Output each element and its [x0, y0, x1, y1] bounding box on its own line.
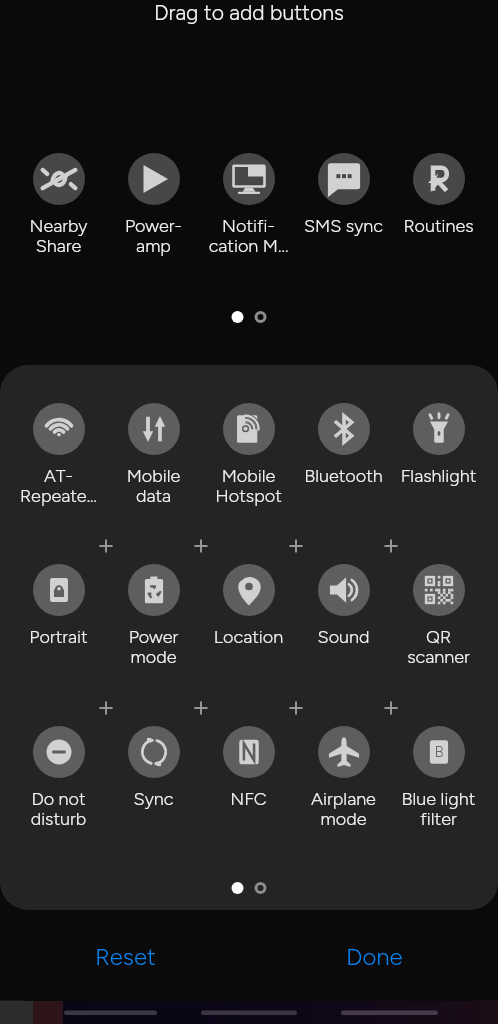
staticText: Routines	[391, 215, 486, 237]
button[interactable]: Nearby Share	[11, 153, 106, 263]
button[interactable]: QR scanner	[391, 564, 486, 674]
staticText: NFC	[201, 788, 296, 810]
button[interactable]: Airplane mode	[296, 726, 391, 836]
staticText: Mobile data	[106, 465, 201, 507]
button[interactable]: Reset	[75, 932, 176, 980]
button[interactable]: Power mode	[106, 564, 201, 674]
staticText: Power- amp	[106, 215, 201, 257]
other: Page indicator	[223, 304, 275, 330]
staticText: SMS sync	[296, 215, 391, 237]
staticText: Location	[201, 626, 296, 648]
staticText: Nearby Share	[11, 215, 106, 257]
staticText: Blue light filter	[391, 788, 486, 830]
button[interactable]: NFC	[201, 726, 296, 836]
staticText: Flashlight	[391, 465, 486, 487]
staticText: Do not disturb	[11, 788, 106, 830]
staticText: Sound	[296, 626, 391, 648]
staticText: Drag to add buttons	[0, 0, 498, 26]
button[interactable]: Mobile data	[106, 403, 201, 513]
button[interactable]: Mobile Hotspot	[201, 403, 296, 513]
button[interactable]: AT- Repeate...	[11, 403, 106, 513]
other: Page indicator	[223, 875, 275, 901]
button[interactable]: Notifi- cation M...	[201, 153, 296, 263]
button[interactable]: Portrait	[11, 564, 106, 674]
staticText: Power mode	[106, 626, 201, 668]
button[interactable]: Done	[324, 932, 425, 980]
staticText: Notifi- cation M...	[201, 215, 296, 257]
button[interactable]: Flashlight	[391, 403, 486, 513]
button[interactable]: Bluetooth	[296, 403, 391, 513]
button[interactable]: Routines	[391, 153, 486, 263]
staticText: AT- Repeate...	[11, 465, 106, 507]
button[interactable]: B	[391, 726, 486, 836]
staticText: Reset	[95, 942, 156, 971]
button[interactable]: Sound	[296, 564, 391, 674]
staticText: QR scanner	[391, 626, 486, 668]
button[interactable]: Power- amp	[106, 153, 201, 263]
staticText: Done	[346, 942, 403, 971]
staticText: Bluetooth	[296, 465, 391, 487]
button[interactable]: Location	[201, 564, 296, 674]
button[interactable]: Sync	[106, 726, 201, 836]
staticText: Mobile Hotspot	[201, 465, 296, 507]
staticText: Sync	[106, 788, 201, 810]
staticText: B	[434, 743, 444, 761]
staticText: Airplane mode	[296, 788, 391, 830]
button[interactable]: Do not disturb	[11, 726, 106, 836]
button[interactable]: SMS sync	[296, 153, 391, 263]
staticText: Portrait	[11, 626, 106, 648]
